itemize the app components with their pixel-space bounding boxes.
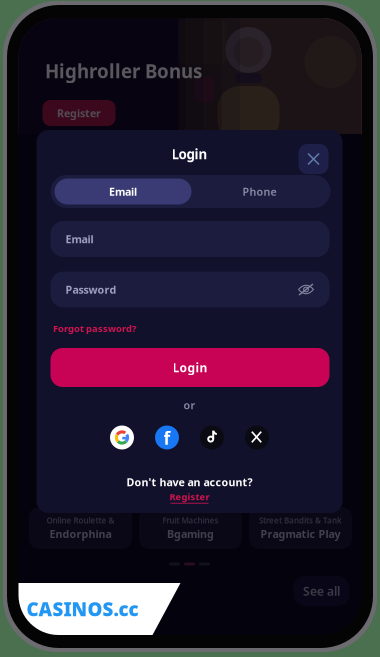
button[interactable]: Continue with TikTok (200, 425, 224, 449)
button[interactable]: Continue with Facebook (155, 425, 179, 449)
staticText: f (163, 426, 170, 449)
staticText: Password (65, 282, 116, 297)
staticText: Login (172, 359, 207, 375)
staticText: Forgot password? (53, 322, 136, 335)
button[interactable]: Email (54, 178, 191, 204)
staticText: Don't have an account? (126, 475, 252, 489)
button[interactable]: Continue with Google (110, 425, 134, 449)
staticText: Endorphina (49, 527, 111, 541)
staticText: Street Bandits & Tank (259, 515, 342, 526)
staticText: Fruit Machines (162, 515, 218, 526)
button[interactable]: Close (298, 144, 328, 174)
staticText: Bgaming (167, 527, 214, 541)
staticText: Phone (242, 184, 276, 199)
button[interactable]: Phone (191, 178, 328, 204)
staticText: CASINOS.cc (26, 597, 138, 621)
staticText: Highroller Bonus (45, 59, 202, 83)
button[interactable]: Fruit Machines (139, 507, 242, 549)
staticText: or (183, 398, 195, 412)
staticText: Email (65, 232, 93, 246)
staticText: Login (171, 145, 207, 163)
button[interactable]: Online Roulette & (29, 507, 132, 549)
staticText: Email (109, 184, 137, 199)
button[interactable]: Continue with X (245, 425, 269, 449)
staticText: Online Roulette & (46, 515, 114, 526)
staticText: See all (303, 583, 340, 599)
staticText: Register (169, 490, 209, 503)
button[interactable]: Register (42, 100, 115, 126)
button[interactable]: Password (50, 271, 329, 307)
button[interactable]: See all (293, 576, 349, 606)
button[interactable]: Forgot password? (51, 321, 137, 335)
button[interactable]: Login (50, 348, 329, 387)
staticText: Register (57, 106, 101, 120)
button[interactable]: Email (50, 221, 329, 257)
button[interactable]: Street Bandits & Tank (249, 507, 352, 549)
staticText: Pragmatic Play (260, 527, 340, 541)
button[interactable]: Register (167, 490, 211, 504)
